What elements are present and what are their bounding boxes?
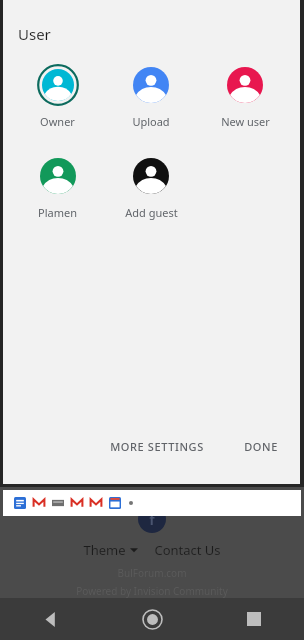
button[interactable]: Upload bbox=[104, 64, 198, 129]
staticText: Add guest bbox=[125, 205, 178, 220]
staticText: Plamen bbox=[38, 205, 77, 220]
button[interactable]: Contact Us bbox=[154, 541, 221, 559]
other: Screenshot bbox=[52, 497, 64, 509]
staticText: User bbox=[18, 24, 51, 44]
staticText: New user bbox=[221, 114, 270, 129]
other: Gmail bbox=[71, 497, 83, 509]
staticText: DONE bbox=[244, 439, 278, 454]
button[interactable]: Theme bbox=[83, 541, 138, 559]
staticText: MORE SETTINGS bbox=[110, 439, 204, 454]
other: Calendar bbox=[109, 497, 121, 509]
button[interactable]: New user bbox=[198, 64, 292, 129]
button[interactable]: Owner bbox=[11, 64, 104, 129]
staticText: Powered by Invision Community bbox=[76, 584, 228, 598]
staticText: Contact Us bbox=[154, 541, 221, 559]
other: News bbox=[14, 497, 26, 509]
button[interactable]: DONE bbox=[236, 433, 286, 460]
other: Facebook bbox=[138, 505, 166, 533]
button[interactable]: Plamen bbox=[11, 155, 104, 220]
staticText: BulForum.com bbox=[117, 566, 187, 580]
staticText: Upload bbox=[132, 114, 170, 129]
other: Gmail bbox=[33, 497, 45, 509]
button[interactable]: Back bbox=[0, 598, 102, 640]
button[interactable]: MORE SETTINGS bbox=[102, 433, 212, 460]
staticText: Theme bbox=[83, 541, 126, 559]
button[interactable]: Add guest bbox=[104, 155, 198, 220]
other: Gmail bbox=[90, 497, 102, 509]
staticText: f bbox=[149, 510, 155, 529]
button[interactable]: Home bbox=[102, 598, 203, 640]
button[interactable]: Recent apps bbox=[203, 598, 304, 640]
staticText: Owner bbox=[40, 114, 75, 129]
